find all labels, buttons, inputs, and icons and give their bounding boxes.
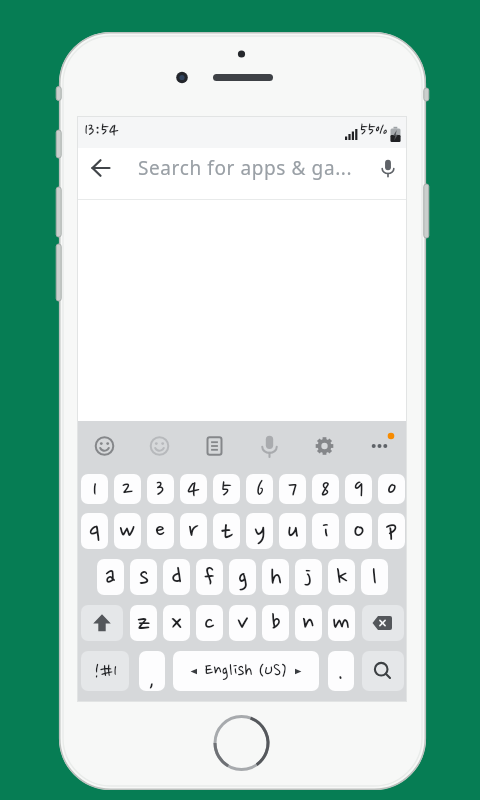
staticText: 1 [92, 476, 98, 503]
staticText: 3 [156, 476, 165, 503]
button[interactable] [247, 429, 292, 465]
button[interactable]: 5 [213, 474, 240, 504]
staticText: 7 [288, 476, 298, 503]
staticText: h [270, 563, 282, 592]
button[interactable]: a [97, 559, 124, 595]
button[interactable]: e [147, 513, 174, 549]
button[interactable]: l [361, 559, 388, 595]
staticText: !#1 [94, 661, 117, 682]
staticText: i [322, 517, 330, 546]
staticText: q [89, 517, 101, 546]
staticText: k [336, 563, 348, 592]
button[interactable] [81, 605, 123, 641]
button[interactable]: h [262, 559, 289, 595]
button[interactable]: v [229, 605, 256, 641]
button[interactable]: w [114, 513, 141, 549]
button[interactable]: q [81, 513, 108, 549]
button[interactable]: 1 [81, 474, 108, 504]
staticText: 5 [221, 476, 232, 503]
button[interactable]: !#1 [81, 651, 129, 691]
button[interactable]: k [328, 559, 355, 595]
staticText: u [287, 517, 299, 546]
staticText: 13:54 [84, 120, 119, 141]
staticText: 6 [256, 476, 264, 503]
staticText: x [171, 609, 183, 638]
staticText: 9 [354, 476, 364, 503]
staticText: e [155, 517, 166, 546]
button[interactable]: x [163, 605, 190, 641]
button[interactable]: c [196, 605, 223, 641]
button[interactable]: z [130, 605, 157, 641]
button[interactable]: 2 [114, 474, 141, 504]
staticText: b [271, 609, 281, 638]
button[interactable]: 6 [246, 474, 273, 504]
button[interactable]: , [139, 651, 165, 691]
button[interactable] [362, 651, 404, 691]
staticText: 8 [321, 476, 330, 503]
button[interactable]: f [196, 559, 223, 595]
button[interactable]: 9 [345, 474, 372, 504]
button[interactable] [82, 429, 127, 465]
staticText: v [237, 609, 249, 638]
button[interactable]: t [213, 513, 240, 549]
button[interactable]: 0 [378, 474, 405, 504]
staticText: z [137, 609, 151, 638]
button[interactable] [302, 429, 347, 465]
staticText: n [302, 609, 315, 638]
button[interactable]: 7 [279, 474, 306, 504]
button[interactable]: Search for apps & ga... [138, 155, 353, 181]
button[interactable]: s [130, 559, 157, 595]
button[interactable] [85, 152, 117, 196]
button[interactable] [357, 429, 402, 465]
button[interactable]: 8 [312, 474, 339, 504]
staticText: 0 [387, 476, 397, 503]
staticText: , [148, 662, 156, 691]
button[interactable]: d [163, 559, 190, 595]
button[interactable]: u [279, 513, 306, 549]
button[interactable]: n [295, 605, 322, 641]
staticText: 55% [360, 121, 388, 141]
staticText: a [105, 563, 116, 592]
button[interactable]: . [328, 651, 354, 691]
staticText: English (US) [205, 661, 287, 681]
staticText: m [332, 609, 351, 638]
button[interactable]: English (US) [173, 651, 319, 691]
staticText: c [204, 609, 215, 638]
staticText: d [171, 563, 182, 592]
staticText: g [238, 563, 248, 592]
staticText: y [254, 517, 266, 546]
staticText: 2 [122, 476, 133, 503]
staticText: r [188, 517, 199, 546]
staticText: w [119, 517, 136, 546]
button[interactable]: y [246, 513, 273, 549]
button[interactable] [362, 605, 404, 641]
staticText: p [386, 517, 398, 546]
button[interactable]: g [229, 559, 256, 595]
button[interactable] [137, 429, 182, 465]
button[interactable]: 4 [180, 474, 207, 504]
button[interactable]: i [312, 513, 339, 549]
staticText: l [371, 563, 378, 592]
button[interactable]: j [295, 559, 322, 595]
button[interactable]: 3 [147, 474, 174, 504]
button[interactable] [192, 429, 237, 465]
button[interactable]: m [328, 605, 355, 641]
staticText: f [204, 563, 215, 592]
button[interactable] [372, 152, 404, 196]
button[interactable]: b [262, 605, 289, 641]
staticText: . [338, 658, 344, 688]
staticText: o [353, 517, 365, 546]
button[interactable]: o [345, 513, 372, 549]
staticText: j [304, 563, 313, 592]
staticText: 4 [187, 476, 200, 503]
button[interactable]: r [180, 513, 207, 549]
staticText: t [221, 517, 233, 546]
staticText: s [139, 563, 149, 592]
button[interactable]: p [378, 513, 405, 549]
